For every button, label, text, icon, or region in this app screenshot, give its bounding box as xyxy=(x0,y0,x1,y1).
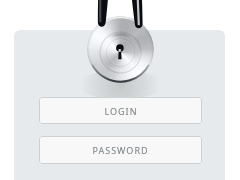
button[interactable]: PASSWORD xyxy=(39,136,202,164)
staticText: LOGIN xyxy=(104,105,138,117)
staticText: PASSWORD xyxy=(92,144,149,156)
button[interactable]: LOGIN xyxy=(39,97,202,124)
